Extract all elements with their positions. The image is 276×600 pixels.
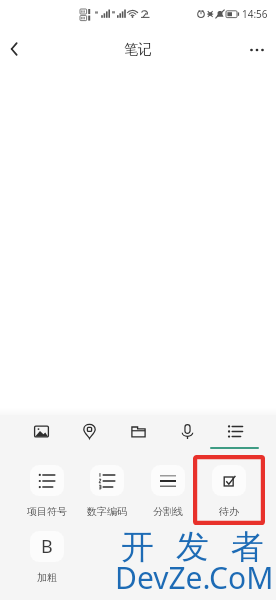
staticText: 待办 (219, 505, 239, 516)
button[interactable]: Insert image (25, 415, 57, 447)
button[interactable]: B (21, 528, 73, 582)
button[interactable]: More options (244, 37, 270, 63)
button[interactable]: 数字编码 (81, 462, 133, 516)
button[interactable]: 分割线 (142, 462, 194, 516)
staticText: 加粗 (37, 571, 57, 582)
staticText: 开发者 (110, 526, 275, 568)
staticText: 分割线 (153, 505, 183, 516)
button[interactable]: Back (2, 36, 28, 62)
button[interactable]: 待办 (203, 462, 255, 516)
staticText: B (41, 534, 53, 559)
staticText: 14:56 (242, 7, 268, 21)
button[interactable]: Location (73, 415, 105, 447)
button[interactable]: List formatting (219, 415, 251, 447)
button[interactable]: 项目符号 (21, 462, 73, 516)
staticText: 数字编码 (87, 505, 127, 516)
staticText: 笔记 (124, 41, 152, 59)
button[interactable]: Folder (122, 415, 154, 447)
button[interactable]: Voice input (171, 415, 203, 447)
staticText: DevZe.CoM (115, 557, 274, 598)
staticText: 项目符号 (27, 505, 67, 516)
